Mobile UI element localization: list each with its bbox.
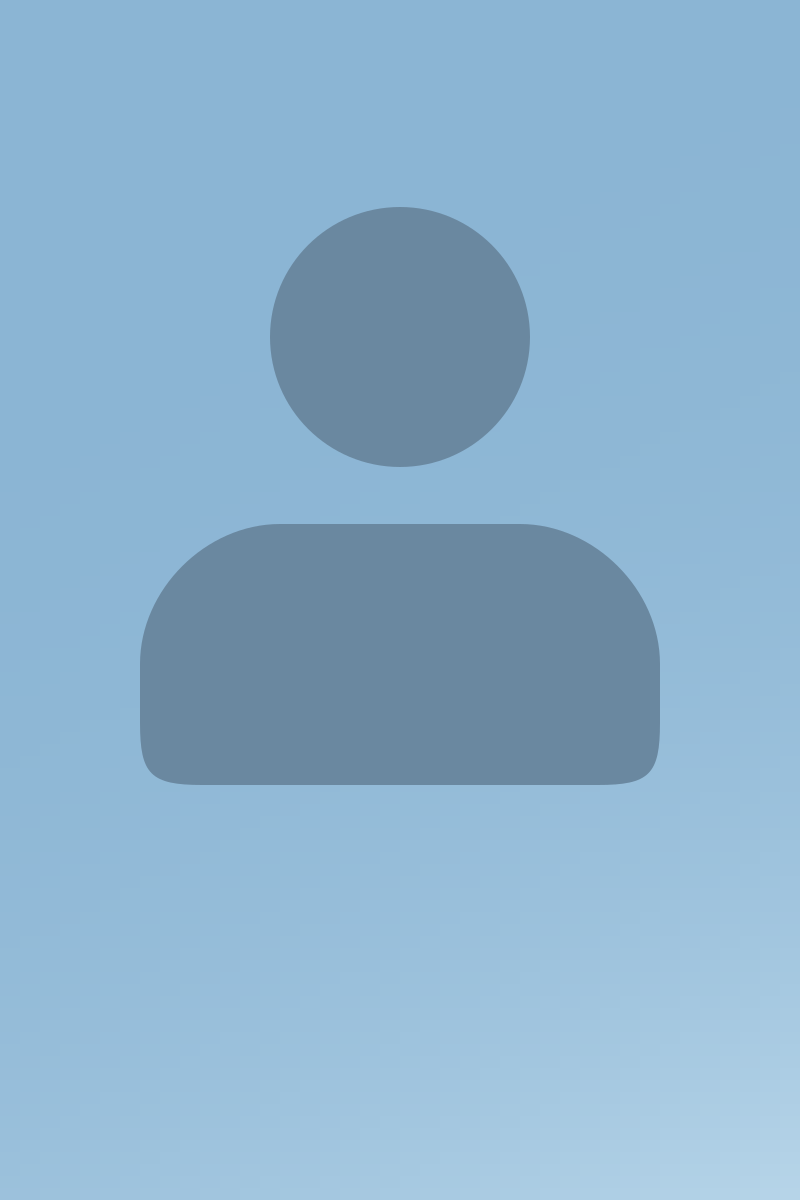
button[interactable]: Profile photo [0,0,800,1200]
